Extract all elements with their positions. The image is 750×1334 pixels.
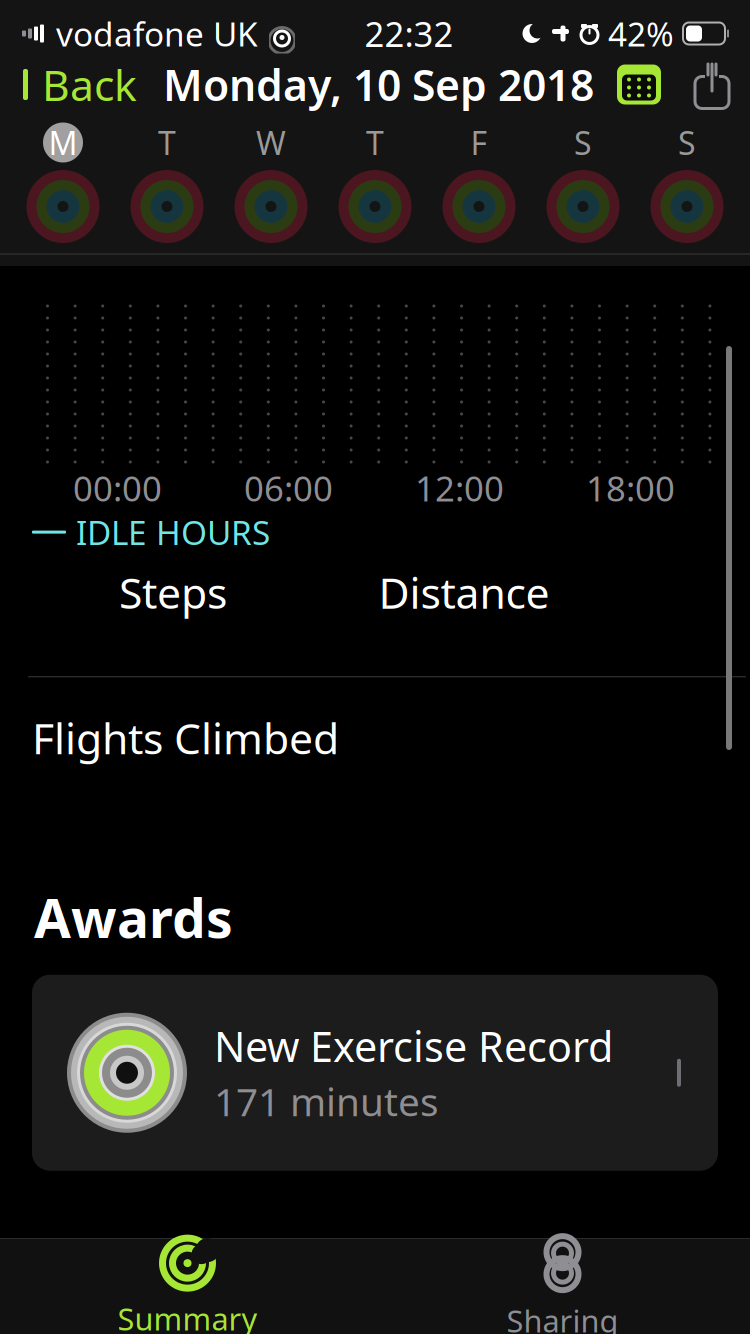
staticText: Awards <box>34 882 233 953</box>
staticText: Flights Climbed <box>32 709 339 766</box>
staticText: Back <box>42 56 137 113</box>
button[interactable]: Sharing <box>375 1239 750 1334</box>
staticText: IDLE HOURS <box>76 510 270 554</box>
staticText: Monday, 10 Sep 2018 <box>163 56 594 113</box>
staticText: Distance <box>378 564 549 621</box>
button[interactable]: T <box>323 118 427 248</box>
button[interactable]: Back <box>0 55 153 113</box>
staticText: Summary <box>117 1298 257 1334</box>
staticText: New Exercise Record <box>214 1019 613 1073</box>
staticText: T <box>366 121 384 164</box>
staticText: 18:00 <box>586 465 675 511</box>
staticText: T <box>158 121 176 164</box>
staticText: 22:32 <box>364 10 453 56</box>
button[interactable]: T <box>115 118 219 248</box>
button[interactable]: S <box>531 118 635 248</box>
staticText: S <box>678 121 696 164</box>
staticText: 42% <box>608 11 674 56</box>
staticText: 06:00 <box>244 465 333 511</box>
button[interactable]: New Exercise Record <box>32 975 718 1171</box>
staticText: M <box>48 121 77 164</box>
button[interactable]: W <box>219 118 323 248</box>
staticText: 00:00 <box>73 465 162 511</box>
button[interactable]: M <box>11 118 115 248</box>
button[interactable]: F <box>427 118 531 248</box>
staticText: 171 minutes <box>214 1075 439 1127</box>
staticText: Steps <box>119 564 227 621</box>
staticText: F <box>470 121 487 164</box>
staticText: 12:00 <box>415 465 504 511</box>
staticText: Sharing <box>506 1300 618 1334</box>
staticText: S <box>574 121 592 164</box>
staticText: vodafone UK <box>56 11 258 56</box>
button[interactable]: S <box>635 118 739 248</box>
button[interactable]: Share <box>674 55 750 113</box>
staticText: W <box>256 121 286 164</box>
button[interactable]: Summary <box>0 1239 375 1334</box>
button[interactable]: Calendar <box>604 55 674 113</box>
